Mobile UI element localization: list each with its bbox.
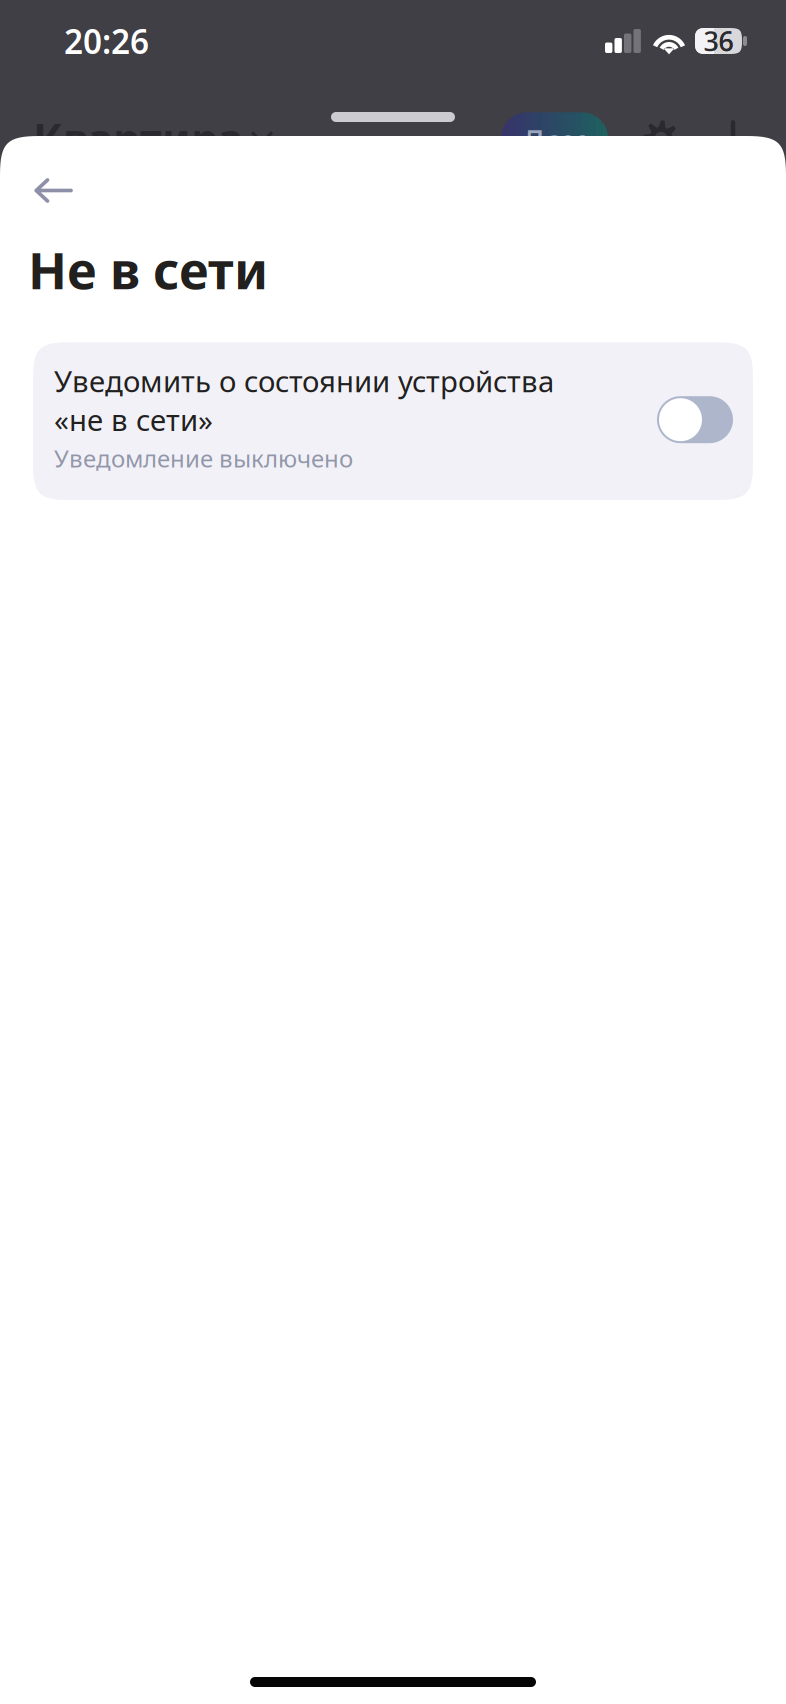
staticText: 20:26 — [64, 19, 149, 63]
staticText: Дом — [522, 120, 587, 161]
button[interactable]: Назад — [0, 136, 102, 221]
staticText: 36 — [703, 23, 733, 59]
staticText: Уведомление выключено — [54, 442, 353, 474]
staticText: Уведомить о состоянии устройства «не в с… — [54, 361, 554, 439]
staticText: 36 — [703, 23, 733, 59]
staticText: Квартира — [33, 110, 243, 167]
button[interactable]: Уведомить о состоянии устройства «не в с… — [33, 342, 753, 500]
staticText: Не в сети — [28, 236, 268, 303]
